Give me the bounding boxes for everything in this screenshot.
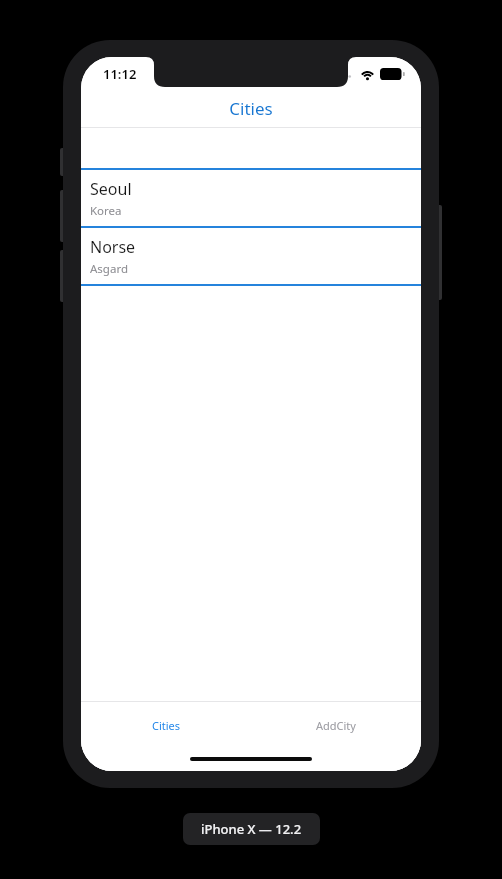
staticText: Seoul xyxy=(90,178,132,200)
staticText: AddCity xyxy=(316,718,356,733)
staticText: Asgard xyxy=(90,261,128,277)
staticText: Norse xyxy=(90,236,136,258)
button[interactable]: Norse xyxy=(81,226,421,284)
button[interactable]: AddCity xyxy=(251,702,421,749)
staticText: 11:12 xyxy=(103,65,137,83)
staticText: Korea xyxy=(90,203,122,219)
staticText: Cities xyxy=(229,97,273,120)
staticText: iPhone X — 12.2 xyxy=(201,820,302,838)
button[interactable]: Seoul xyxy=(81,168,421,226)
staticText: Cities xyxy=(152,718,181,733)
other: Device label iPhone X 12.2 xyxy=(201,820,302,838)
button[interactable]: Cities xyxy=(81,702,251,749)
